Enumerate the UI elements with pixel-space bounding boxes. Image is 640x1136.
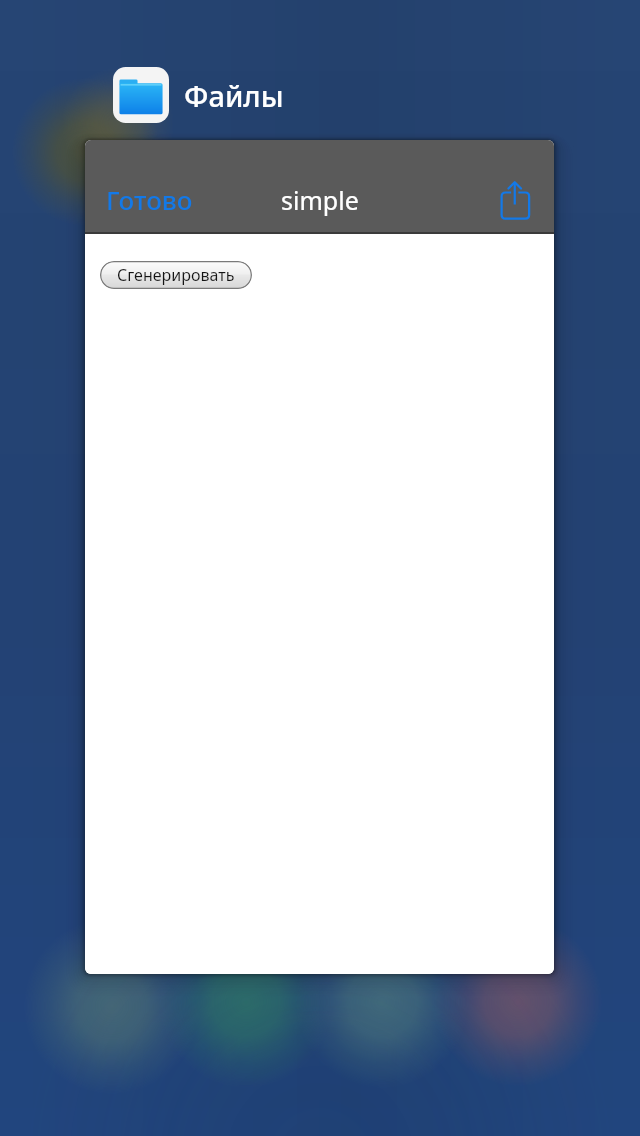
staticText: Готово	[106, 182, 193, 217]
button[interactable]: Готово	[94, 180, 205, 216]
staticText: simple	[281, 183, 359, 217]
staticText: Сгенерировать	[117, 264, 235, 286]
button[interactable]: Сгенерировать	[100, 261, 252, 289]
staticText: Файлы	[184, 76, 284, 115]
button[interactable]: Share	[498, 179, 534, 215]
